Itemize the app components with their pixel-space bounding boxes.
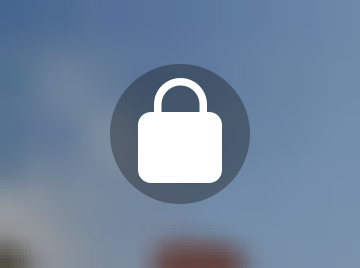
button[interactable]: Locked bbox=[0, 0, 360, 268]
